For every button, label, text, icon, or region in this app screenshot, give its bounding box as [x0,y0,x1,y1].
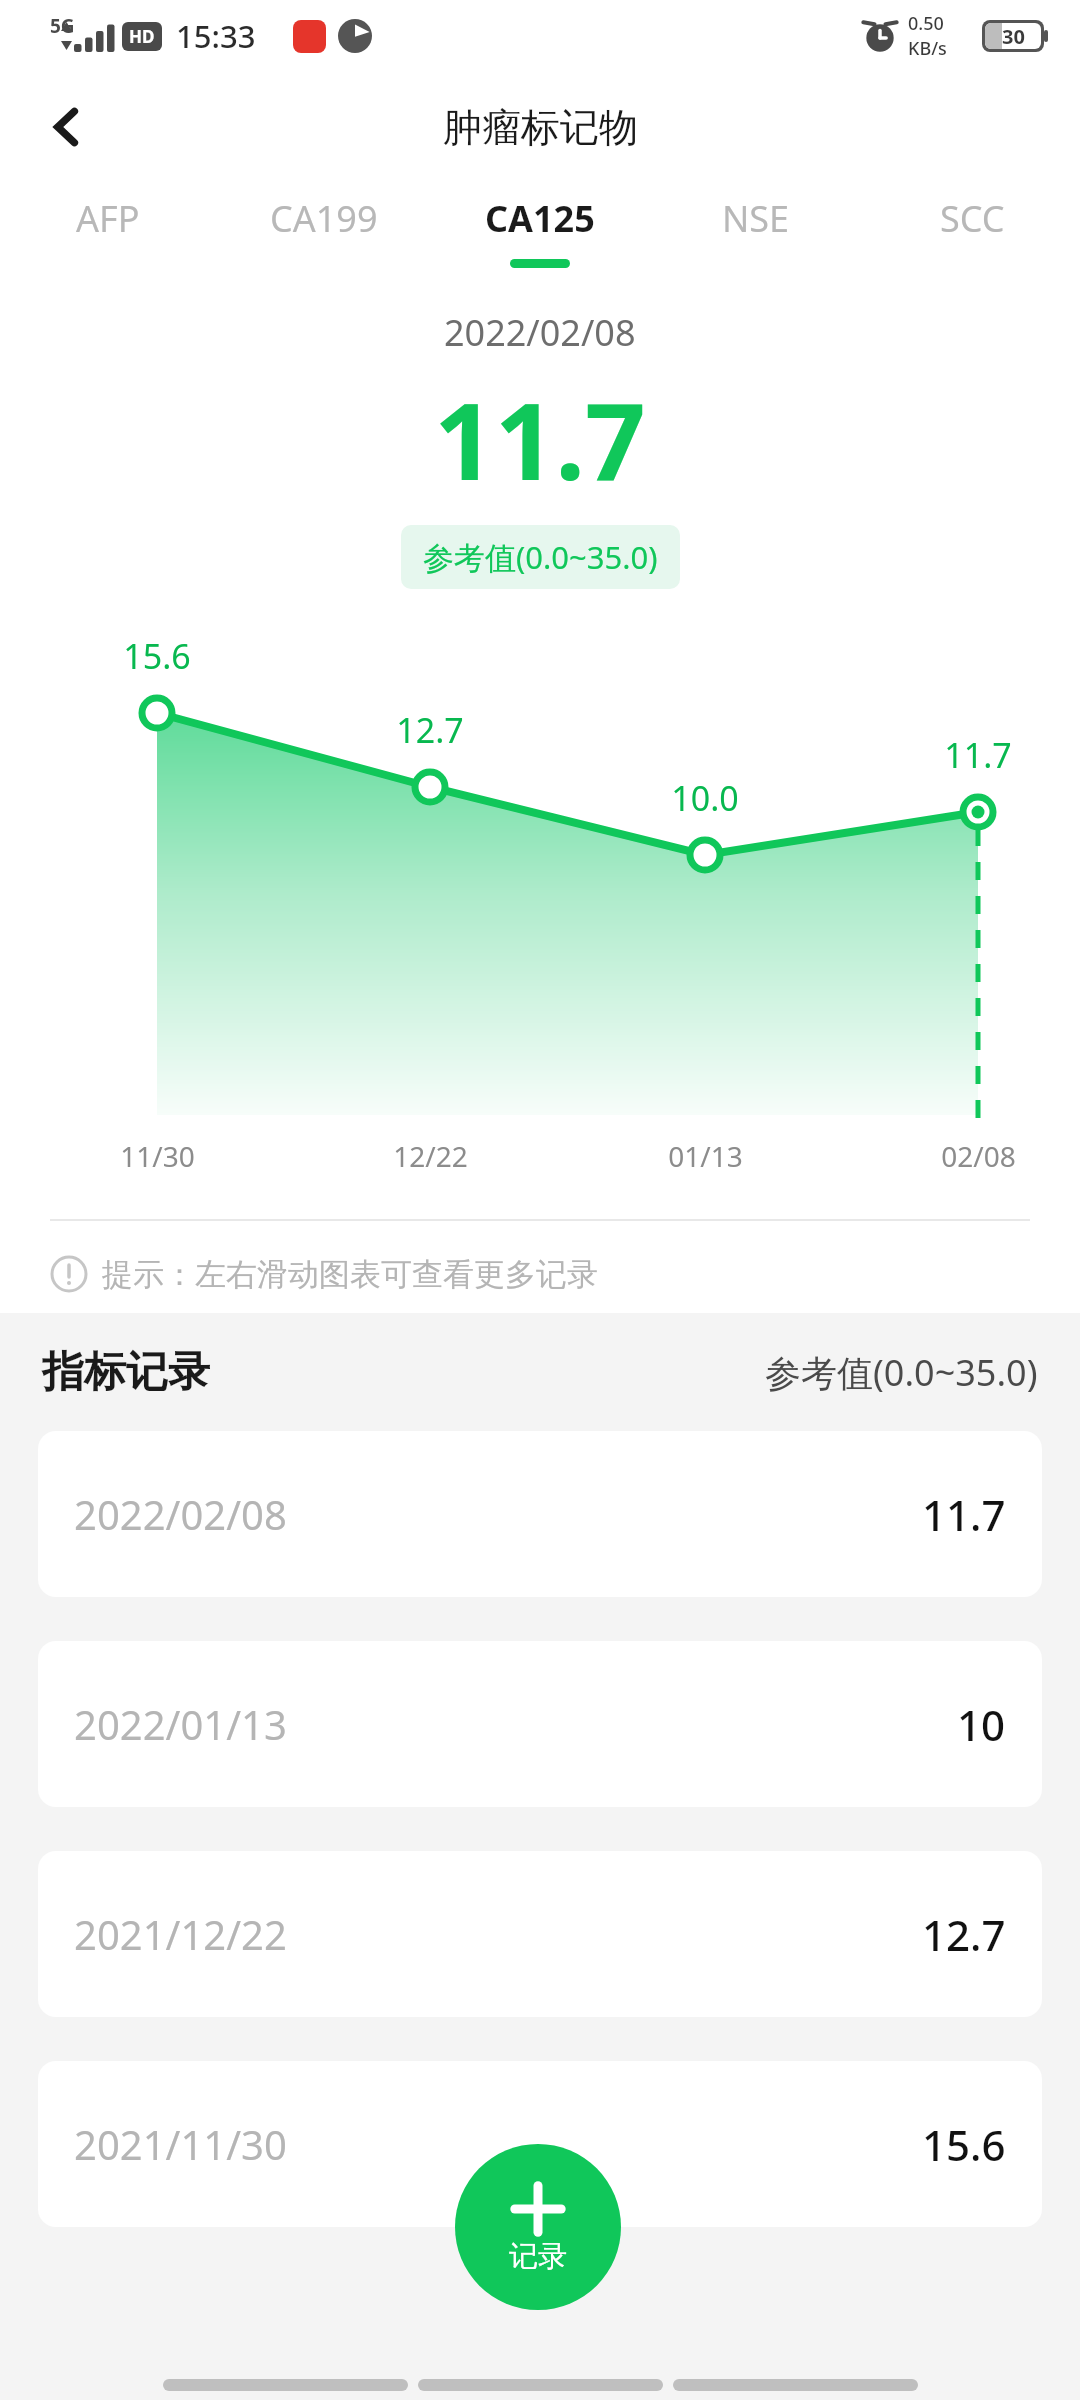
button[interactable]: SCC [864,182,1080,290]
staticText: 0.50 [908,11,944,36]
staticText: 15:33 [176,15,256,57]
staticText: KB/s [908,36,947,61]
staticText: 提示：左右滑动图表可查看更多记录 [102,1255,598,1294]
staticText: 记录 [509,2238,567,2275]
staticText: 11/30 [120,1137,195,1175]
staticText: 12.7 [922,1906,1006,1963]
staticText: 参考值(0.0~35.0) [765,1348,1038,1397]
button[interactable]: Home [418,2379,663,2391]
staticText: 01/13 [668,1137,743,1175]
button[interactable]: Recents [673,2379,918,2391]
staticText: 10 [957,1696,1006,1753]
button[interactable]: CA199 [216,182,432,290]
staticText: 11.7 [944,732,1012,778]
button[interactable]: Back [163,2379,408,2391]
staticText: 15.6 [922,2116,1006,2173]
staticText: 11.7 [434,367,646,511]
staticText: 12.7 [396,707,464,753]
button[interactable]: 2022/01/13 [38,1641,1042,1807]
staticText: 12/22 [393,1137,468,1175]
staticText: CA125 [485,194,595,243]
staticText: HD [129,25,155,48]
staticText: NSE [722,194,790,243]
staticText: 指标记录 [42,1346,210,1399]
button[interactable]: Back [22,82,112,172]
staticText: 10.0 [671,775,739,821]
staticText: 2022/02/08 [444,308,636,357]
staticText: CA199 [270,194,378,243]
button[interactable]: 记录 [455,2144,621,2310]
staticText: 2021/12/22 [74,1907,287,1961]
button[interactable]: 2021/12/22 [38,1851,1042,2017]
staticText: 2022/01/13 [74,1697,287,1751]
button[interactable]: AFP [0,182,216,290]
staticText: 肿瘤标记物 [443,103,638,152]
staticText: SCC [940,194,1005,243]
staticText: 30 [1002,23,1025,49]
button[interactable]: NSE [648,182,864,290]
button[interactable]: 2022/02/08 [38,1431,1042,1597]
staticText: 02/08 [941,1137,1016,1175]
staticText: AFP [76,194,140,243]
button[interactable]: 2021/11/30 [38,2061,1042,2227]
staticText: 参考值(0.0~35.0) [423,536,658,578]
staticText: 2021/11/30 [74,2117,287,2171]
staticText: 11.7 [922,1486,1006,1543]
button[interactable]: CA125 [432,182,648,290]
staticText: 2022/02/08 [74,1487,287,1541]
staticText: 5G [50,13,75,39]
staticText: 15.6 [123,633,191,679]
